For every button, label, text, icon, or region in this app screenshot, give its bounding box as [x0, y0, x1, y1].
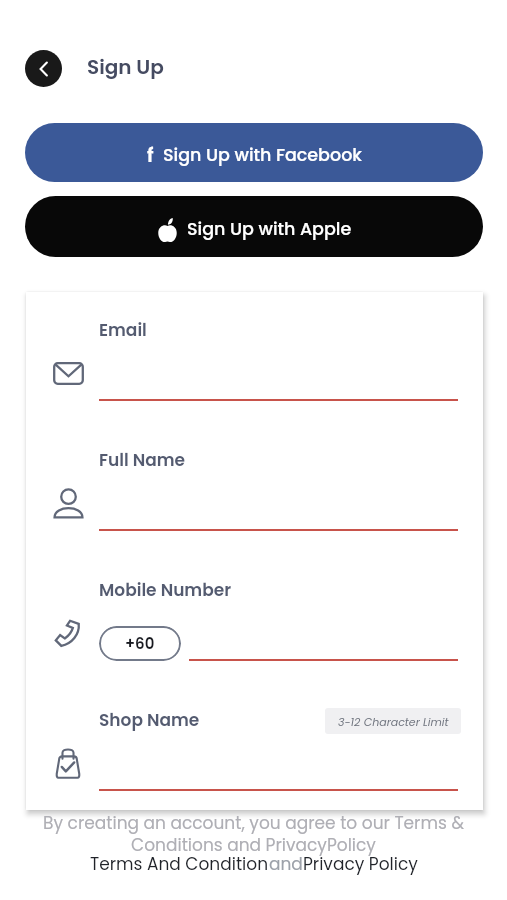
staticText: and — [269, 852, 303, 876]
staticText: Sign Up — [87, 53, 164, 81]
staticText: Sign Up with Facebook — [163, 143, 362, 168]
staticText: Email — [99, 318, 147, 342]
staticText: Sign Up with Apple — [187, 217, 352, 242]
staticText: By creating an account, you agree to our… — [43, 811, 464, 857]
staticText: 3-12 Character Limit — [338, 714, 449, 729]
staticText: f — [147, 142, 154, 169]
staticText: Mobile Number — [99, 578, 232, 602]
staticText: +60 — [125, 633, 155, 654]
button[interactable]: +60 — [99, 626, 181, 661]
button[interactable]: Privacy Policy — [303, 852, 418, 876]
button[interactable]: Back — [25, 50, 62, 87]
button[interactable]: Terms And Condition — [90, 852, 269, 876]
button[interactable]: f — [25, 123, 483, 182]
staticText: Shop Name — [99, 708, 200, 732]
staticText: Full Name — [99, 448, 186, 472]
button[interactable]: Sign Up with Apple — [25, 196, 483, 257]
